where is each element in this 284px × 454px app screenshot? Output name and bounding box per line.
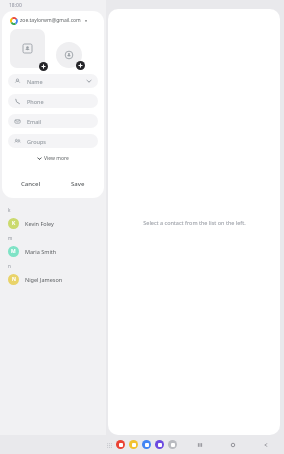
button[interactable]: View more xyxy=(33,153,73,164)
button[interactable]: Add profile photo xyxy=(56,42,82,68)
staticText: n xyxy=(8,263,11,269)
button[interactable]: Back xyxy=(260,439,272,451)
button[interactable]: zoe.taylorwm@gmail.com xyxy=(8,15,91,26)
button[interactable]: Add photo xyxy=(10,29,45,68)
staticText: N xyxy=(12,276,16,283)
button[interactable]: Messages xyxy=(116,440,125,449)
staticText: Name xyxy=(27,78,43,85)
staticText: M xyxy=(11,248,16,255)
button[interactable]: Home xyxy=(227,439,239,451)
staticText: Save xyxy=(71,180,85,188)
button[interactable]: Name xyxy=(8,74,98,88)
button[interactable]: Settings xyxy=(168,440,177,449)
button[interactable]: Email xyxy=(8,114,98,128)
button[interactable]: All apps xyxy=(104,440,114,450)
button[interactable]: Recents xyxy=(194,439,206,451)
button[interactable]: Add xyxy=(39,62,48,71)
staticText: Groups xyxy=(27,138,46,145)
staticText: Cancel xyxy=(21,180,41,188)
button[interactable]: Files xyxy=(129,440,138,449)
staticText: Kevin Foley xyxy=(25,220,54,227)
button[interactable]: M xyxy=(6,242,106,260)
button[interactable]: Save xyxy=(65,177,91,191)
staticText: Maria Smith xyxy=(25,248,57,255)
staticText: Nigel Jameson xyxy=(25,276,63,283)
staticText: View more xyxy=(44,155,69,162)
staticText: 18:00 xyxy=(9,2,22,9)
staticText: m xyxy=(8,235,13,241)
staticText: Select a contact from the list on the le… xyxy=(143,219,246,226)
staticText: k xyxy=(8,207,11,213)
button[interactable]: Photos xyxy=(155,440,164,449)
staticText: K xyxy=(12,220,16,227)
button[interactable]: Add xyxy=(76,61,85,70)
staticText: Phone xyxy=(27,98,44,105)
button[interactable]: Cancel xyxy=(15,177,47,191)
button[interactable]: Groups xyxy=(8,134,98,148)
button[interactable]: Drive xyxy=(142,440,151,449)
staticText: zoe.taylorwm@gmail.com xyxy=(20,17,81,24)
button[interactable]: K xyxy=(6,214,106,232)
staticText: Email xyxy=(27,118,42,125)
button[interactable]: N xyxy=(6,270,106,288)
button[interactable]: Phone xyxy=(8,94,98,108)
